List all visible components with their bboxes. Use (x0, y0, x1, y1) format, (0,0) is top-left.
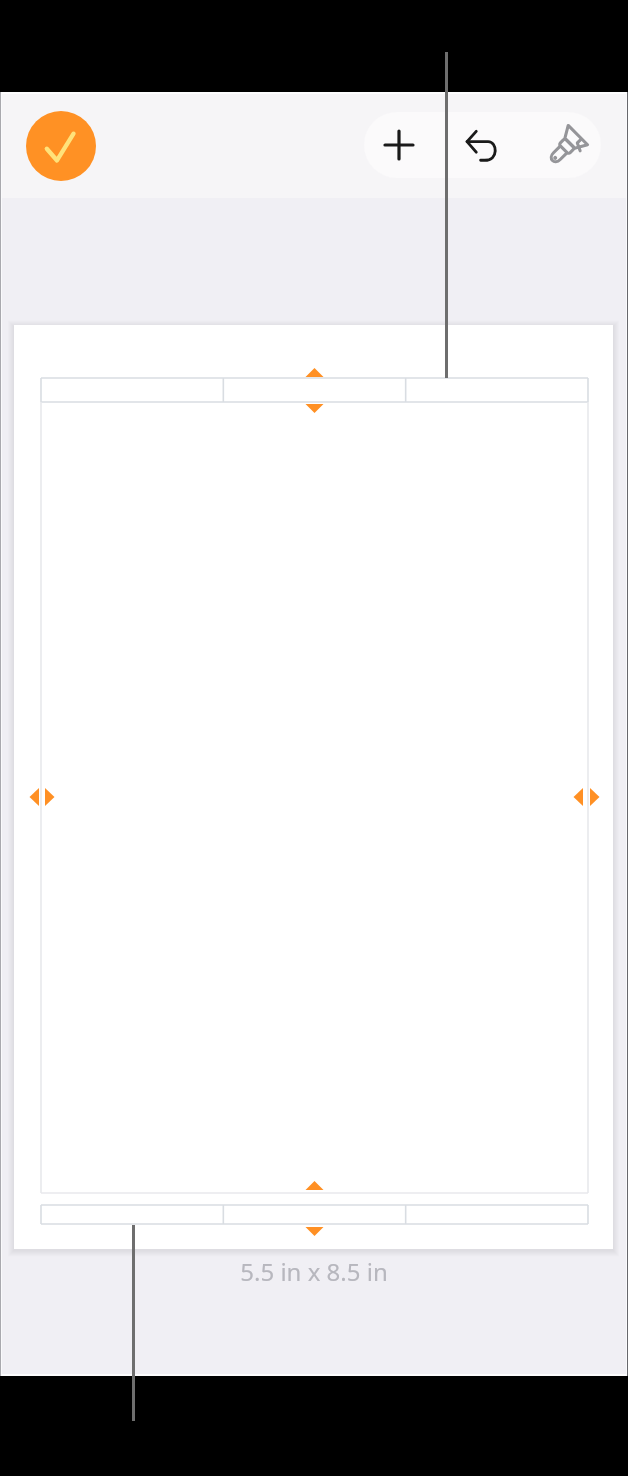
button[interactable]: Done (26, 111, 96, 181)
button[interactable]: Undo (447, 112, 517, 178)
button[interactable]: Add (364, 112, 434, 178)
staticText: 5.5 in x 8.5 in (240, 1255, 388, 1288)
button[interactable]: Format (531, 112, 601, 178)
